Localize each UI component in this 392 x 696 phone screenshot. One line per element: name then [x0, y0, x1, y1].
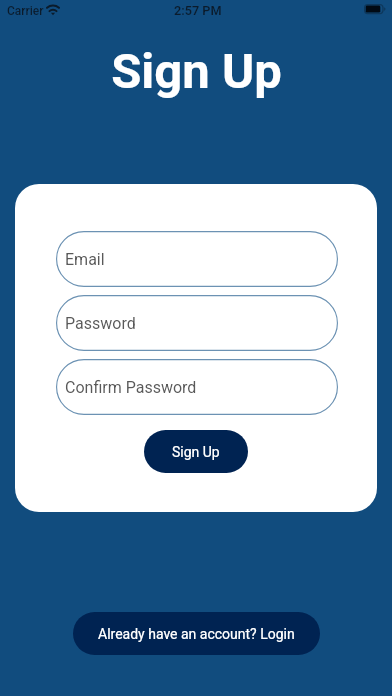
other: Wi-Fi	[47, 4, 59, 15]
staticText: Already have an account? Login	[98, 626, 295, 642]
staticText: 2:57 PM	[174, 3, 222, 18]
staticText: Email	[65, 250, 105, 269]
button[interactable]: Already have an account? Login	[73, 612, 320, 655]
staticText: Confirm Password	[65, 378, 197, 397]
button[interactable]: Password	[56, 295, 338, 351]
other: Battery	[364, 4, 386, 15]
staticText: Sign Up	[111, 43, 282, 100]
staticText: Password	[65, 314, 136, 333]
staticText: Sign Up	[172, 444, 220, 460]
button[interactable]: Email	[56, 231, 338, 287]
button[interactable]: Confirm Password	[56, 359, 338, 415]
button[interactable]: Sign Up	[144, 430, 248, 473]
staticText: Carrier	[7, 4, 44, 18]
